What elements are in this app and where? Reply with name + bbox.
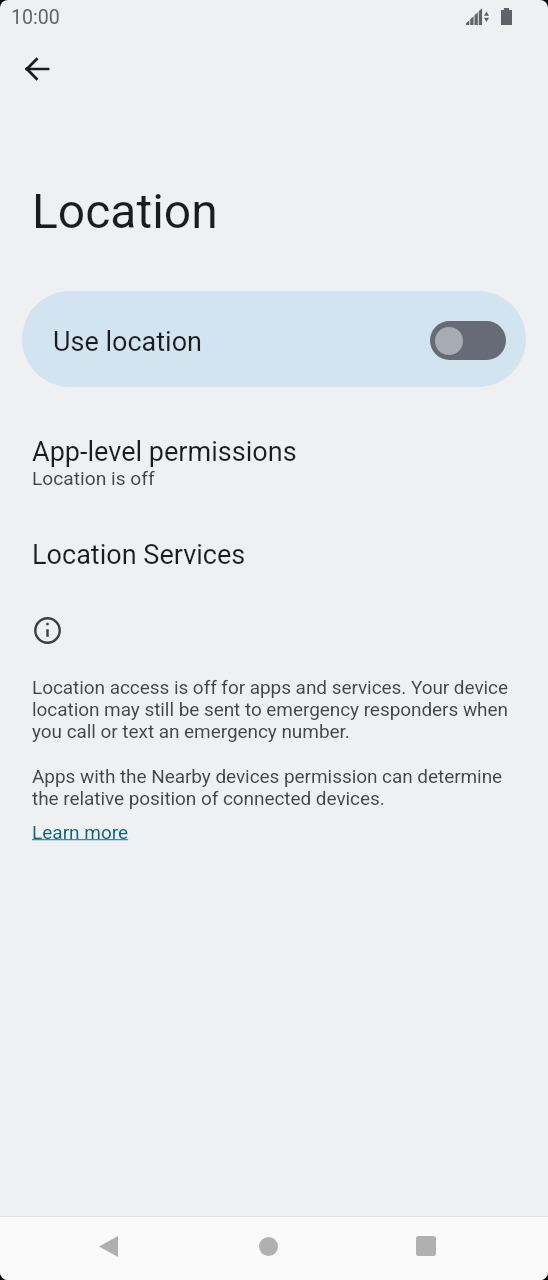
- button[interactable]: App-level permissions: [0, 424, 548, 504]
- button[interactable]: Use location: [22, 291, 526, 387]
- staticText: Location access is off for apps and serv…: [32, 676, 524, 742]
- staticText: Location is off: [32, 467, 155, 490]
- staticText: 10:00: [11, 6, 60, 29]
- staticText: Use location: [53, 326, 202, 358]
- staticText: App-level permissions: [32, 436, 297, 468]
- staticText: Location Services: [32, 539, 246, 571]
- button[interactable]: Learn more: [32, 821, 129, 843]
- staticText: Apps with the Nearby devices permission …: [32, 765, 524, 809]
- button[interactable]: Back: [14, 46, 60, 92]
- button[interactable]: [430, 321, 506, 360]
- button[interactable]: Recent apps: [390, 1217, 462, 1275]
- button[interactable]: Home: [232, 1217, 304, 1275]
- button[interactable]: Back: [72, 1217, 144, 1275]
- staticText: Location: [32, 183, 218, 239]
